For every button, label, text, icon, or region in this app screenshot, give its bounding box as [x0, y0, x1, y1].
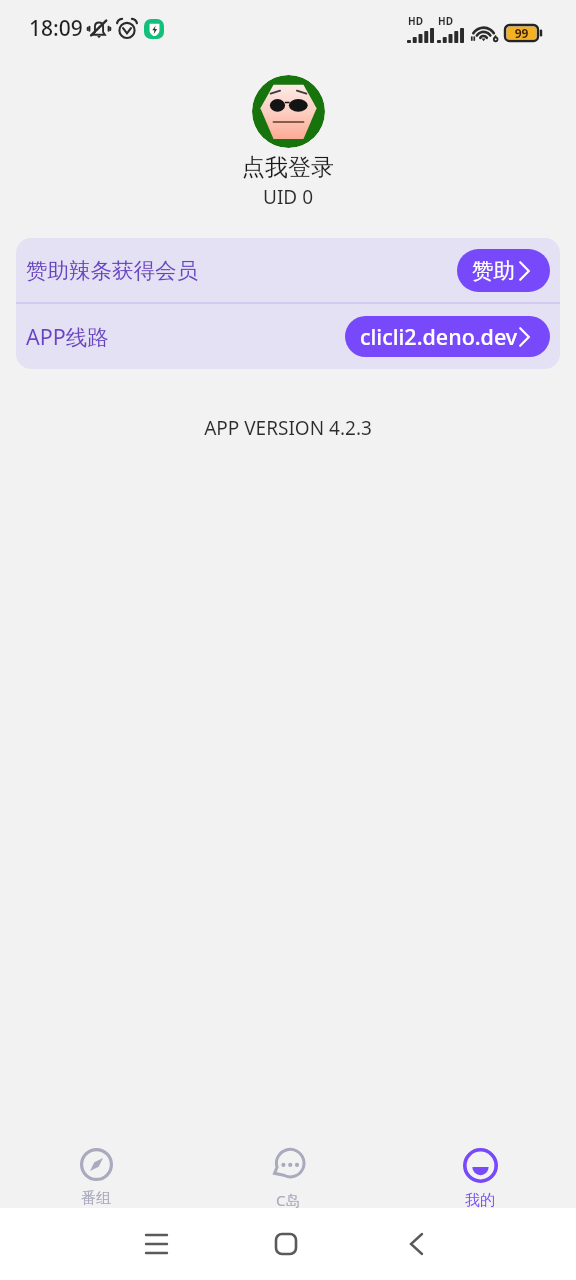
staticText: UID 0 — [263, 184, 314, 210]
staticText: 99 — [505, 25, 538, 41]
button[interactable]: Home — [260, 1218, 312, 1270]
staticText: 赞助 — [472, 257, 515, 284]
button[interactable]: 赞助辣条获得会员 — [16, 238, 560, 302]
button[interactable]: Recents — [130, 1218, 182, 1270]
staticText: clicli2.deno.dev — [360, 322, 518, 351]
button[interactable]: clicli2.deno.dev — [345, 316, 550, 357]
button[interactable]: 点我登录 — [242, 153, 334, 182]
button[interactable]: 赞助 — [457, 249, 550, 292]
staticText: C岛 — [276, 1190, 301, 1208]
staticText: 我的 — [465, 1191, 495, 1208]
button[interactable]: 我的 — [384, 1120, 576, 1208]
staticText: 18:09 — [29, 14, 83, 43]
staticText: HD — [408, 14, 423, 28]
staticText: HD — [438, 14, 453, 28]
staticText: APP VERSION 4.2.3 — [0, 415, 576, 441]
button[interactable]: 番组 — [0, 1120, 192, 1208]
button[interactable]: C岛 — [192, 1120, 384, 1208]
staticText: APP线路 — [26, 322, 109, 351]
staticText: 番组 — [81, 1189, 111, 1208]
button[interactable]: Back — [390, 1218, 442, 1270]
staticText: 赞助辣条获得会员 — [26, 257, 198, 284]
button[interactable]: APP线路 — [16, 304, 560, 369]
button[interactable]: Avatar — [252, 75, 325, 148]
